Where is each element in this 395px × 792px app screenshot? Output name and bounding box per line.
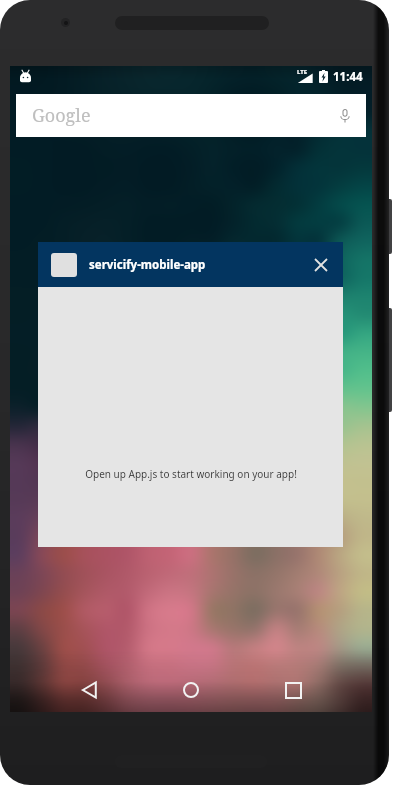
- button[interactable]: Close: [308, 252, 334, 278]
- staticText: LTE: [297, 68, 308, 76]
- button[interactable]: Back: [65, 666, 113, 714]
- button[interactable]: Voice search: [334, 105, 356, 127]
- button[interactable]: Recent apps: [269, 666, 317, 714]
- button[interactable]: Home: [167, 666, 215, 714]
- staticText: 11:44: [333, 69, 363, 85]
- staticText: Open up App.js to start working on your …: [85, 467, 297, 481]
- button[interactable]: Google: [16, 94, 366, 137]
- staticText: servicify-mobile-app: [89, 257, 206, 273]
- staticText: Google: [32, 103, 91, 128]
